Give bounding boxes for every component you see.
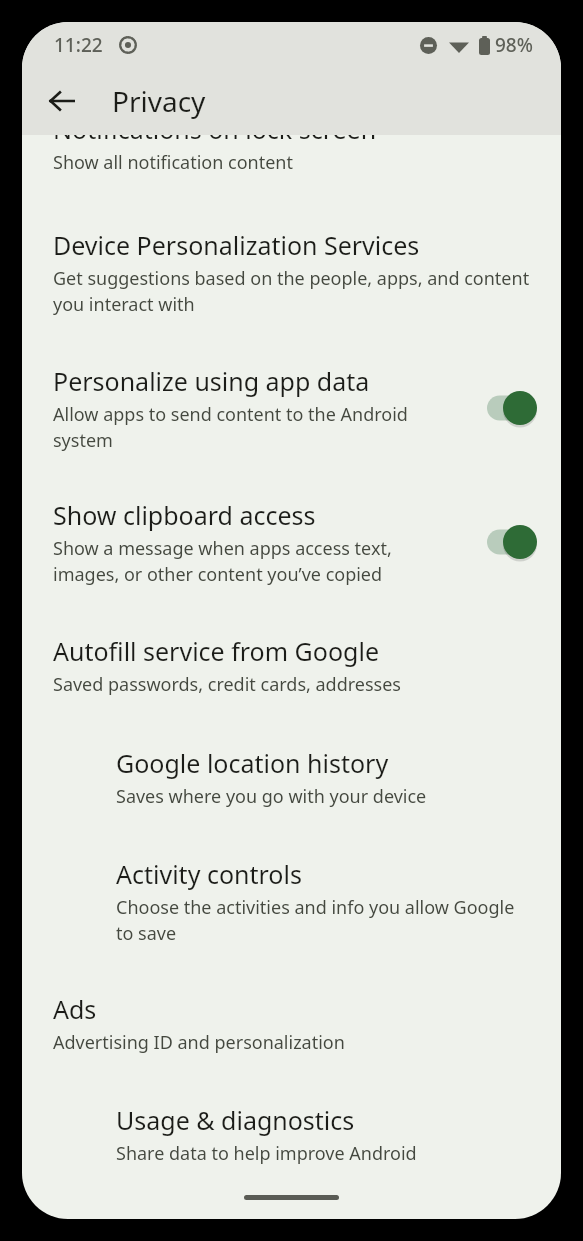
staticText: Show all notification content [53,150,293,175]
staticText: Personalize using app data [53,364,370,398]
button[interactable]: Ads [22,992,561,1055]
staticText: Device Personalization Services [53,228,420,262]
button[interactable]: Back [36,75,88,127]
staticText: Notifications on lock screen [53,112,377,146]
staticText: Advertising ID and personalization [53,1030,345,1055]
button[interactable]: Usage & diagnostics [22,1103,561,1166]
button[interactable]: Personalize using app data [22,364,561,452]
staticText: Activity controls [116,857,302,891]
staticText: Share data to help improve Android [116,1141,417,1166]
staticText: Ads [53,992,97,1026]
button[interactable]: Activity controls [22,857,561,945]
staticText: Show clipboard access [53,498,316,532]
staticText: Choose the activities and info you allow… [116,895,534,945]
button[interactable]: Show clipboard access [22,498,561,586]
staticText: Usage & diagnostics [116,1103,355,1137]
staticText: Get suggestions based on the people, app… [53,266,531,316]
button[interactable]: Autofill service from Google [22,634,561,697]
staticText: Saves where you go with your device [116,784,427,809]
staticText: Privacy [112,82,206,120]
staticText: Autofill service from Google [53,634,379,668]
button[interactable]: Toggle [485,390,537,426]
staticText: Show a message when apps access text, im… [53,536,413,586]
button[interactable]: Notifications on lock screen [22,112,561,175]
button[interactable]: Device Personalization Services [22,228,561,316]
staticText: Google location history [116,746,389,780]
staticText: 11:22 [54,32,103,58]
staticText: Allow apps to send content to the Androi… [53,402,413,452]
staticText: 98% [495,32,533,58]
button[interactable]: Google location history [22,746,561,809]
button[interactable]: Toggle [485,524,537,560]
staticText: Saved passwords, credit cards, addresses [53,672,401,697]
